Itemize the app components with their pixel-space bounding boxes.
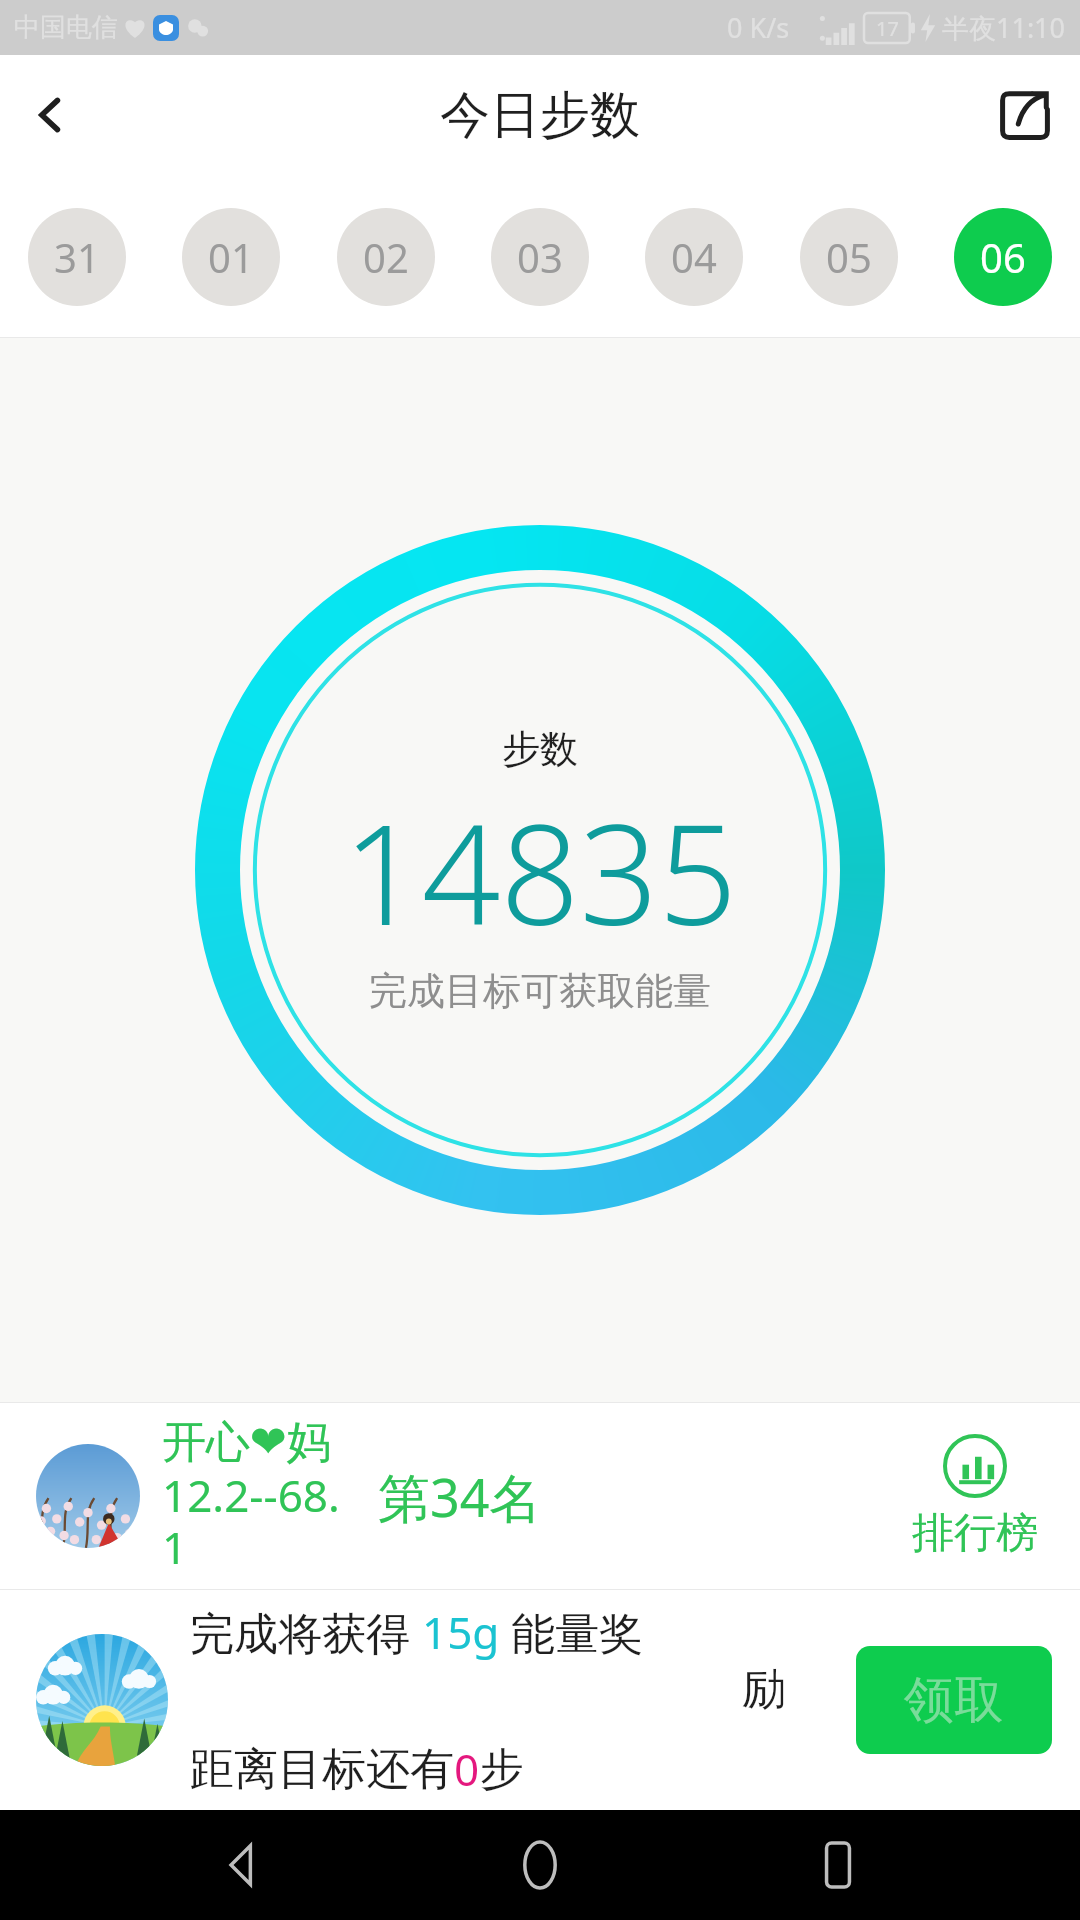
staticText: 15g	[422, 1602, 500, 1662]
staticText: 04	[671, 230, 717, 284]
staticText: 完成目标可获取能量	[369, 967, 711, 1015]
staticText: 步	[480, 1742, 524, 1797]
button[interactable]: 排行榜	[894, 1425, 1056, 1568]
button[interactable]: 04	[645, 208, 743, 306]
staticText: 完成将获得	[190, 1602, 422, 1662]
button[interactable]: 03	[491, 208, 589, 306]
staticText: 今日步数	[440, 84, 640, 147]
staticText: 31	[54, 230, 100, 284]
button[interactable]: 01	[182, 208, 280, 306]
staticText: 第34名	[378, 1461, 542, 1532]
staticText: 开心❤️妈12.2--68.1	[162, 1415, 352, 1577]
button[interactable]: Share	[970, 60, 1080, 170]
button[interactable]: Back	[188, 1810, 298, 1920]
button[interactable]: Home	[485, 1810, 595, 1920]
staticText: 步数	[502, 725, 578, 773]
button[interactable]: 02	[337, 208, 435, 306]
button[interactable]: 06	[954, 208, 1052, 306]
staticText: 励	[190, 1662, 786, 1717]
staticText: 中国电信	[14, 11, 118, 44]
staticText: 领取	[904, 1669, 1004, 1732]
button[interactable]: Back	[0, 65, 100, 165]
staticText: 排行榜	[912, 1507, 1038, 1560]
button[interactable]: 领取	[856, 1646, 1052, 1754]
staticText: 03	[517, 230, 563, 284]
staticText: 05	[826, 230, 872, 284]
staticText: 能量奖	[500, 1602, 644, 1662]
staticText: 0 K/s	[727, 9, 790, 46]
staticText: 02	[363, 230, 409, 284]
button[interactable]: 31	[28, 208, 126, 306]
button[interactable]: Recents	[783, 1810, 893, 1920]
staticText: 距离目标还有	[190, 1742, 454, 1797]
staticText: 06	[980, 230, 1026, 284]
button[interactable]: 开心❤️妈12.2--68.1	[0, 1403, 1080, 1589]
staticText: 半夜11:10	[942, 9, 1066, 46]
button[interactable]: 05	[800, 208, 898, 306]
staticText: 17	[876, 15, 899, 42]
staticText: 14835	[343, 777, 737, 965]
staticText: 01	[208, 230, 254, 284]
staticText: 0	[454, 1739, 480, 1799]
